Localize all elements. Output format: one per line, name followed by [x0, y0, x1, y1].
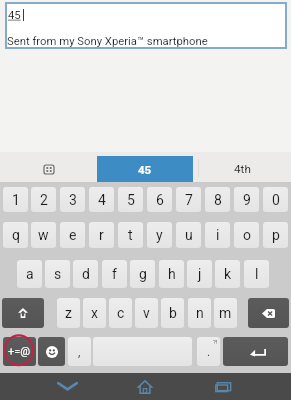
staticText: k — [224, 266, 232, 282]
button[interactable]: o — [234, 222, 259, 248]
button[interactable]: 45 — [5, 2, 287, 49]
button[interactable]: s — [45, 260, 70, 288]
button[interactable]: v — [135, 298, 158, 328]
staticText: 45 — [138, 163, 152, 176]
staticText: h — [168, 266, 176, 282]
staticText: e — [69, 227, 77, 243]
staticText: +=@ — [8, 345, 31, 358]
button[interactable]: +=@ — [3, 337, 36, 366]
button[interactable]: k — [215, 260, 240, 288]
button[interactable]: w — [31, 222, 56, 248]
button[interactable]: h — [159, 260, 184, 288]
button[interactable]: ?! — [197, 337, 220, 366]
button[interactable]: 4 — [89, 187, 114, 212]
button[interactable]: Hide keyboard — [30, 373, 104, 400]
button[interactable]: y — [147, 222, 172, 248]
button[interactable]: 2 — [31, 187, 56, 212]
button[interactable]: Keyboard settings — [38, 156, 60, 182]
button[interactable]: i — [205, 222, 230, 248]
staticText: t — [128, 227, 133, 243]
staticText: d — [82, 266, 90, 282]
staticText: 7 — [185, 192, 193, 208]
button[interactable]: Enter — [223, 337, 288, 366]
button[interactable]: , — [68, 337, 91, 366]
button[interactable]: x — [83, 298, 106, 328]
staticText: 8 — [214, 192, 222, 208]
staticText: 45 — [8, 9, 21, 22]
staticText: . — [207, 345, 211, 359]
staticText: 1 — [12, 192, 20, 208]
button[interactable]: l — [244, 260, 269, 288]
staticText: p — [272, 227, 280, 243]
staticText: v — [143, 305, 150, 321]
staticText: 4 — [98, 192, 106, 208]
button[interactable]: 4th — [198, 156, 286, 182]
button[interactable]: u — [176, 222, 201, 248]
button[interactable]: b — [161, 298, 184, 328]
button[interactable]: 8 — [205, 187, 230, 212]
staticText: w — [38, 227, 49, 243]
button[interactable]: Shift — [2, 298, 44, 328]
staticText: l — [255, 266, 259, 282]
staticText: 5 — [127, 192, 135, 208]
button[interactable]: 9 — [234, 187, 259, 212]
staticText: 0 — [272, 192, 280, 208]
staticText: g — [139, 266, 147, 282]
staticText: z — [65, 305, 72, 321]
button[interactable]: 7 — [176, 187, 201, 212]
staticText: 6 — [156, 192, 164, 208]
button[interactable]: g — [130, 260, 155, 288]
button[interactable]: 0 — [263, 187, 288, 212]
staticText: ?! — [213, 338, 218, 345]
button[interactable]: r — [89, 222, 114, 248]
button[interactable]: Home — [108, 373, 182, 400]
button[interactable]: m — [214, 298, 237, 328]
staticText: u — [185, 227, 193, 243]
button[interactable]: d — [73, 260, 98, 288]
button[interactable]: f — [102, 260, 127, 288]
button[interactable]: n — [188, 298, 211, 328]
button[interactable]: e — [60, 222, 85, 248]
staticText: b — [169, 305, 177, 321]
staticText: r — [99, 227, 104, 243]
button[interactable]: 6 — [147, 187, 172, 212]
button[interactable]: 1 — [3, 187, 28, 212]
button[interactable]: Recent apps — [186, 373, 260, 400]
button[interactable]: 5 — [118, 187, 143, 212]
button[interactable]: Emoji — [38, 337, 65, 366]
staticText: y — [156, 227, 163, 243]
staticText: o — [243, 227, 251, 243]
button[interactable]: q — [3, 222, 28, 248]
staticText: 4th — [234, 162, 251, 176]
button[interactable]: a — [17, 260, 42, 288]
staticText: a — [26, 266, 34, 282]
staticText: c — [117, 305, 125, 321]
button[interactable]: t — [118, 222, 143, 248]
button[interactable]: p — [263, 222, 288, 248]
staticText: i — [216, 227, 220, 243]
button[interactable]: 45 — [97, 156, 193, 182]
staticText: 3 — [69, 192, 77, 208]
staticText: x — [91, 305, 98, 321]
staticText: f — [112, 266, 117, 282]
staticText: j — [198, 266, 202, 282]
button[interactable]: z — [57, 298, 80, 328]
staticText: Sent from my Sony Xperia™ smartphone — [7, 35, 208, 48]
staticText: 2 — [40, 192, 48, 208]
staticText: n — [196, 305, 204, 321]
staticText: m — [219, 305, 232, 321]
staticText: 9 — [243, 192, 251, 208]
button[interactable]: 3 — [60, 187, 85, 212]
staticText: , — [78, 345, 81, 359]
button[interactable]: j — [187, 260, 212, 288]
staticText: s — [54, 266, 62, 282]
button[interactable]: c — [109, 298, 132, 328]
staticText: q — [12, 227, 20, 243]
button[interactable]: Backspace — [248, 298, 289, 328]
